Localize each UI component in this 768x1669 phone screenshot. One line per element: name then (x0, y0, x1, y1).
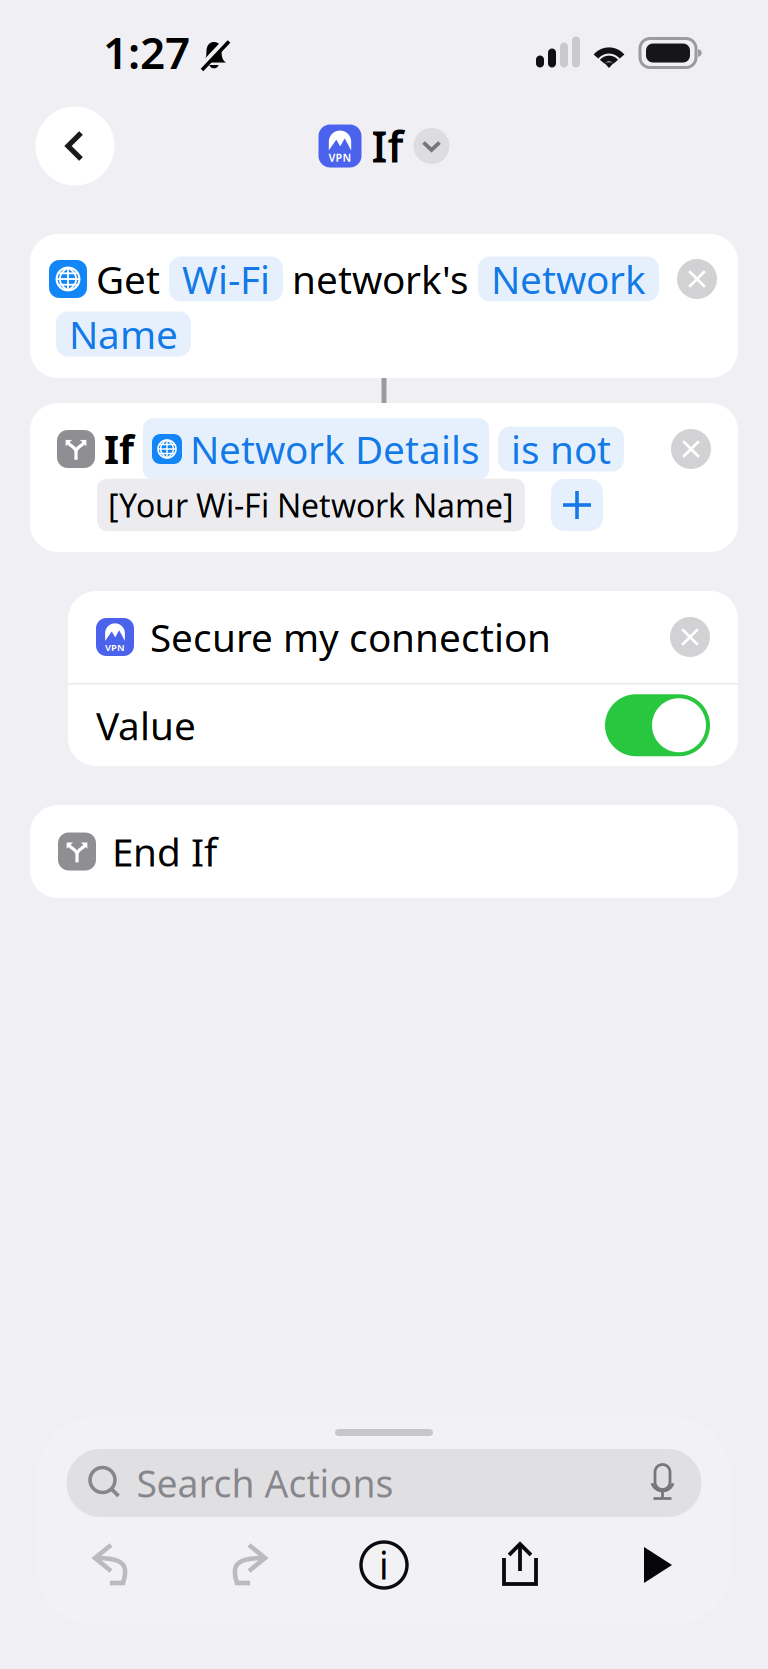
button[interactable]: If (30, 403, 738, 552)
staticText: Name (69, 308, 178, 360)
staticText: Value (96, 700, 196, 751)
staticText: network's (292, 253, 469, 305)
staticText: is not (511, 423, 611, 475)
staticText: VPN (328, 150, 351, 165)
staticText: Search Actions (136, 1458, 393, 1508)
staticText: If (371, 118, 403, 174)
button[interactable]: Shortcut options (318, 118, 449, 174)
staticText: [Your Wi-Fi Network Name] (108, 484, 514, 526)
staticText: 1:27 (103, 23, 190, 81)
staticText: End If (112, 826, 217, 877)
button[interactable]: Share (452, 1529, 588, 1601)
staticText: Network (491, 253, 646, 305)
button[interactable]: Back (29, 100, 121, 192)
button[interactable]: VPN (68, 591, 738, 683)
staticText: Wi-Fi (182, 253, 270, 305)
button[interactable]: Value (68, 684, 738, 766)
staticText: VPN (105, 641, 125, 653)
staticText: i (379, 1540, 389, 1590)
button[interactable]: End If (30, 805, 738, 898)
button[interactable]: Run (588, 1529, 724, 1601)
staticText: Network Details (190, 423, 480, 475)
button[interactable]: Details (316, 1529, 452, 1601)
staticText: Secure my connection (150, 611, 551, 663)
staticText: Get (96, 253, 160, 305)
button[interactable]: Redo (180, 1529, 316, 1601)
button[interactable]: Undo (44, 1529, 180, 1601)
staticText: If (104, 423, 134, 475)
button[interactable]: Get (30, 234, 738, 378)
